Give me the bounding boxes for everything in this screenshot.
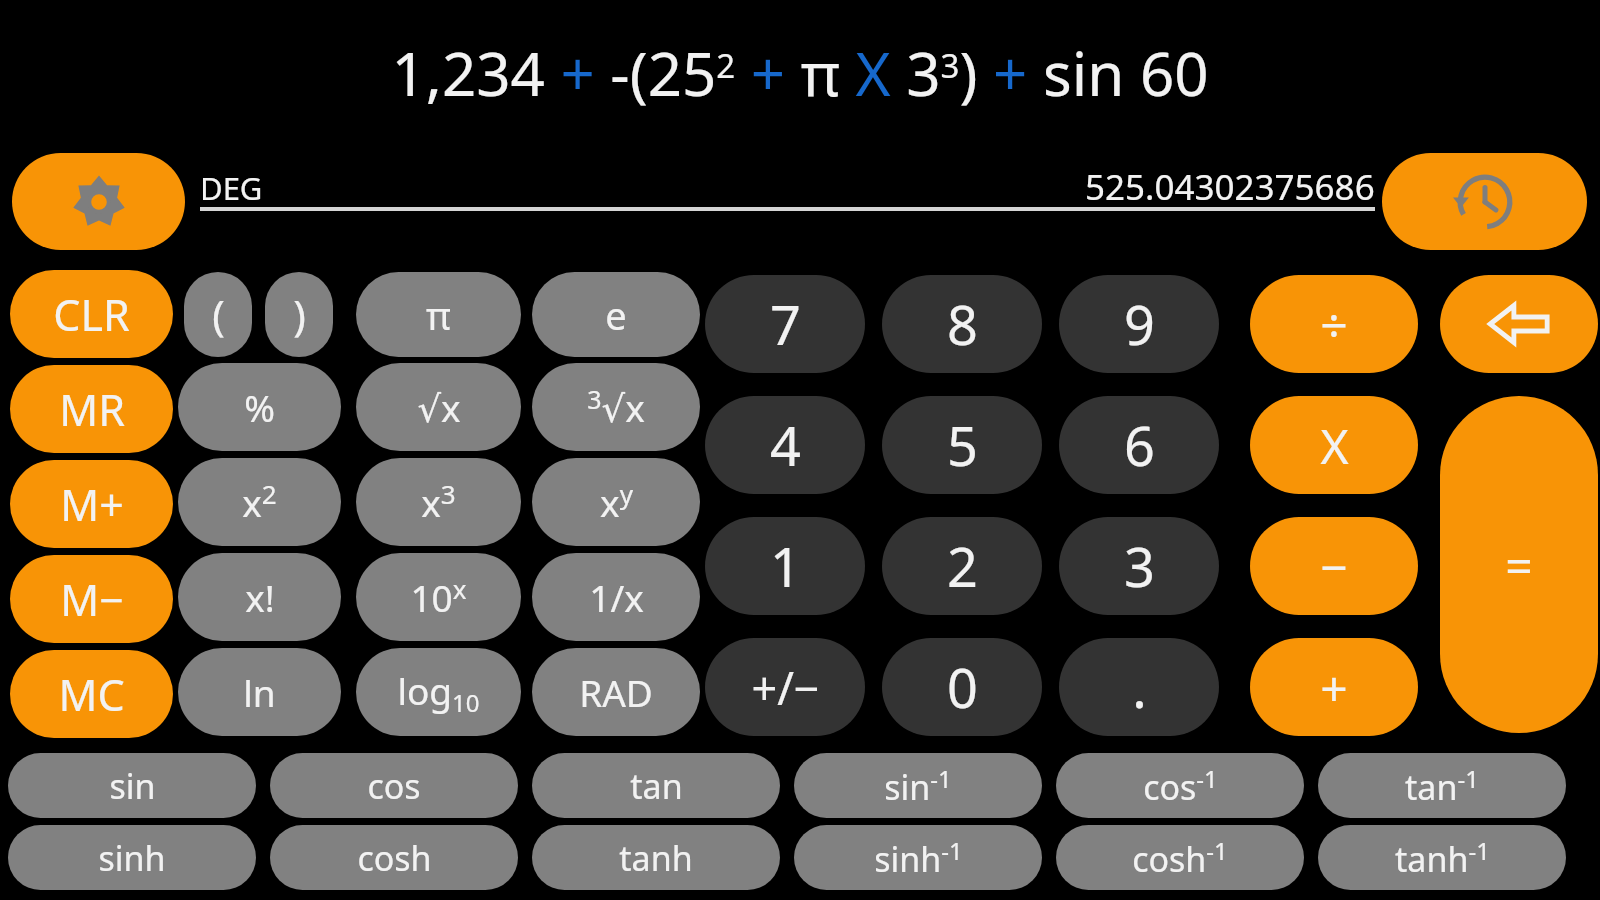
button[interactable]: 2 [882,517,1042,615]
button[interactable]: 9 [1059,275,1219,373]
button[interactable]: 7 [705,275,865,373]
button[interactable]: ( [184,272,252,357]
button[interactable]: x2 [178,458,341,546]
staticText: 4 [770,408,801,482]
staticText: xy [600,476,633,528]
button[interactable]: ÷ [1250,275,1418,373]
staticText: √x [417,382,461,432]
staticText: 10x [410,571,467,623]
button[interactable]: CLR [10,270,173,358]
button[interactable]: π [356,272,521,357]
staticText: tan-1 [1405,762,1479,810]
button[interactable]: 1/x [532,553,700,641]
staticText: sin [109,763,156,809]
button[interactable]: 1 [705,517,865,615]
button[interactable]: tan-1 [1318,753,1566,818]
button[interactable]: cos-1 [1056,753,1304,818]
button[interactable]: X [1250,396,1418,494]
staticText: 5 [947,408,978,482]
button[interactable]: + [1250,638,1418,736]
staticText: MR [59,380,125,439]
button[interactable]: % [178,363,341,451]
button[interactable]: MC [10,650,173,738]
button[interactable]: 3 [1059,517,1219,615]
staticText: 8 [947,287,978,361]
button[interactable]: 3√x [532,363,700,451]
button[interactable]: 4 [705,396,865,494]
button[interactable]: MR [10,365,173,453]
staticText: sinh-1 [874,834,963,882]
staticText: RAD [579,667,653,717]
staticText: 9 [1124,287,1155,361]
staticText: 0 [947,650,978,724]
staticText: M− [60,570,124,629]
button[interactable]: 0 [882,638,1042,736]
staticText: x3 [421,476,456,528]
staticText: − [1320,534,1348,599]
staticText: 2 [947,529,978,603]
staticText: cos [367,763,421,809]
staticText: % [244,382,275,432]
button[interactable]: tan [532,753,780,818]
button[interactable]: x! [178,553,341,641]
button[interactable]: √x [356,363,521,451]
staticText: tan [630,763,683,809]
staticText: sinh [98,835,166,881]
button[interactable]: 10x [356,553,521,641]
button[interactable]: M+ [10,460,173,548]
staticText: 1/x [589,572,644,622]
button[interactable]: 8 [882,275,1042,373]
button[interactable]: ln [178,648,341,736]
button[interactable]: +/− [705,638,865,736]
staticText: sin-1 [884,762,952,810]
staticText: ln [243,667,276,717]
staticText: tanh-1 [1395,834,1490,882]
staticText: 525.04302375686 [1085,163,1375,211]
staticText: ( [212,286,225,343]
button[interactable]: Backspace [1440,275,1598,373]
staticText: 7 [770,287,801,361]
button[interactable]: e [532,272,700,357]
staticText: log10 [397,665,480,719]
staticText: X [1320,413,1349,478]
staticText: 1,234 + -(252 + π X 33) + sin 60 [391,32,1209,114]
button[interactable]: . [1059,638,1219,736]
button[interactable]: cosh-1 [1056,825,1304,890]
staticText: cosh-1 [1132,834,1228,882]
button[interactable]: RAD [532,648,700,736]
button[interactable]: sin-1 [794,753,1042,818]
staticText: cos-1 [1143,762,1218,810]
staticText: ÷ [1320,292,1348,357]
button[interactable]: Settings [12,153,185,250]
button[interactable]: ) [265,272,333,357]
button[interactable]: − [1250,517,1418,615]
button[interactable]: 6 [1059,396,1219,494]
staticText: e [605,289,627,341]
staticText: 3 [1124,529,1155,603]
staticText: cosh [357,835,432,881]
button[interactable]: 5 [882,396,1042,494]
staticText: tanh [619,835,693,881]
staticText: 1 [770,529,801,603]
staticText: +/− [751,657,820,718]
button[interactable]: tanh [532,825,780,890]
button[interactable]: tanh-1 [1318,825,1566,890]
button[interactable]: History [1382,153,1587,250]
button[interactable]: sinh [8,825,256,890]
button[interactable]: sin [8,753,256,818]
staticText: x2 [242,476,277,528]
staticText: . [1132,650,1147,724]
staticText: x! [245,572,275,622]
button[interactable]: M− [10,555,173,643]
button[interactable]: sinh-1 [794,825,1042,890]
button[interactable]: log10 [356,648,521,736]
button[interactable]: = [1440,396,1598,733]
staticText: = [1505,532,1533,597]
staticText: ) [293,286,306,343]
staticText: MC [58,665,125,724]
button[interactable]: xy [532,458,700,546]
button[interactable]: x3 [356,458,521,546]
button[interactable]: cosh [270,825,518,890]
button[interactable]: cos [270,753,518,818]
button[interactable]: DEG [200,167,263,209]
